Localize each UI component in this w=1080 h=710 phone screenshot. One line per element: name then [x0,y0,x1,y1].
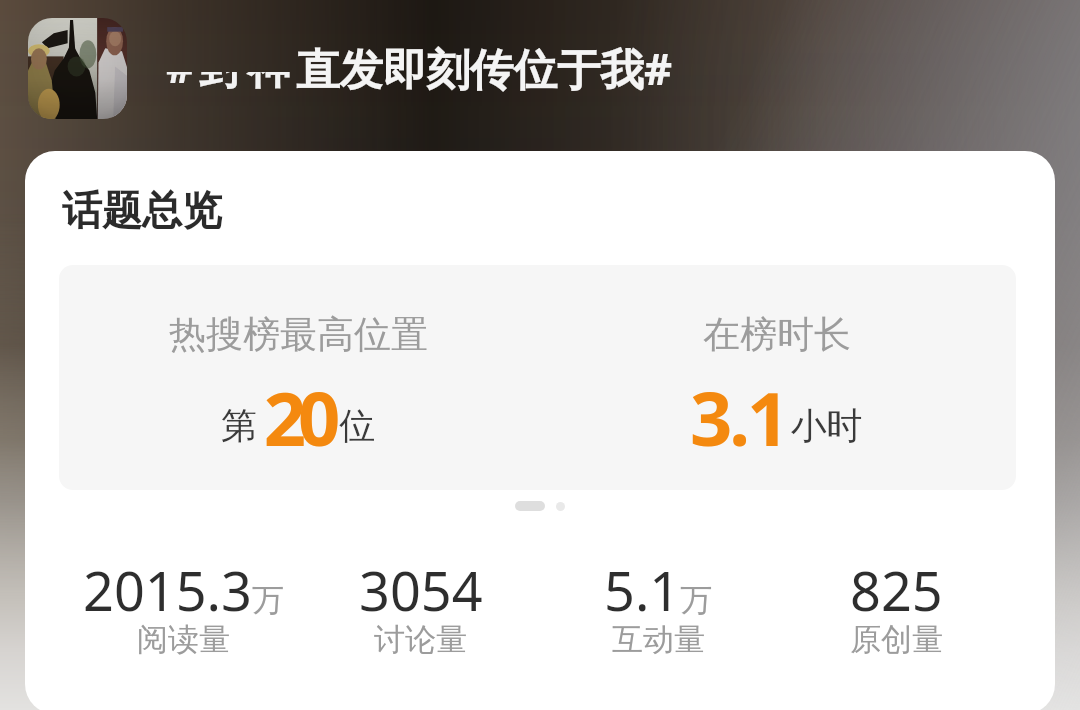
staticText: #封神 [166,72,297,89]
staticText: 3.1 小时 [690,367,863,468]
staticText: 话题总览 [62,185,222,235]
button[interactable]: 话题总览 [25,151,1055,710]
staticText: 5.1万 [604,553,713,627]
staticText: 讨论量 [374,620,467,659]
staticText: 直发即刻传位于我# [296,38,673,97]
staticText: 原创量 [850,620,943,659]
staticText: 第 20 位 [221,367,376,468]
staticText: 3054 [359,553,483,627]
staticText: 热搜榜最高位置 [169,311,428,358]
staticText: 在榜时长 [703,311,851,358]
button[interactable]: Topic cover image [28,18,127,119]
staticText: 825 [850,553,943,627]
staticText: 互动量 [612,620,705,659]
staticText: 2015.3万 [83,553,284,627]
staticText: 阅读量 [137,620,230,659]
